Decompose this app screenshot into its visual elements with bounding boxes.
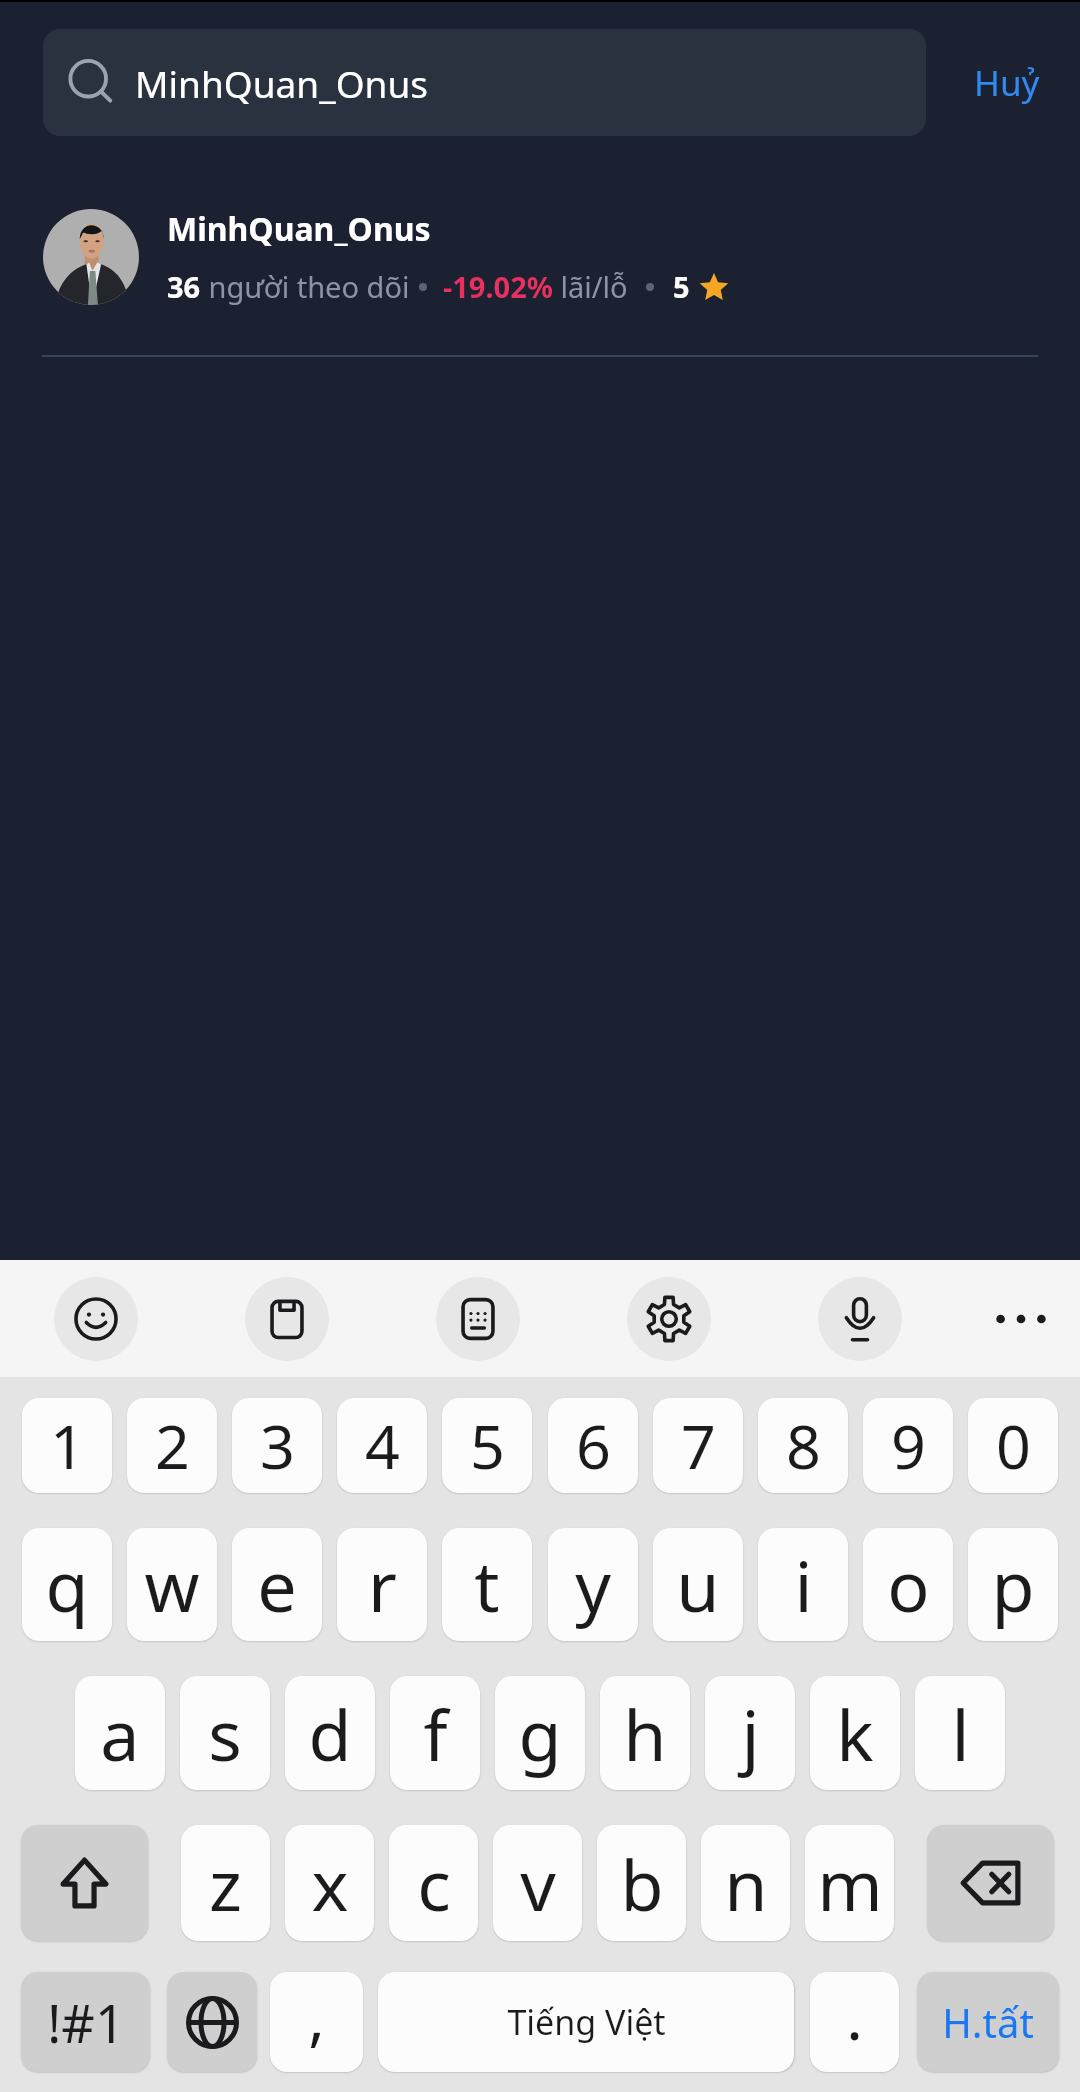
staticText: x xyxy=(311,1836,349,1931)
staticText: o xyxy=(887,1537,930,1632)
staticText: y xyxy=(575,1537,611,1632)
button[interactable]: , xyxy=(270,1972,363,2072)
button[interactable]: Change language xyxy=(167,1972,257,2072)
button[interactable]: g xyxy=(495,1676,585,1790)
staticText: 2 xyxy=(155,1404,190,1487)
button[interactable]: H.tất xyxy=(917,1972,1059,2072)
button[interactable]: w xyxy=(127,1528,217,1641)
button[interactable]: 6 xyxy=(548,1398,638,1493)
button[interactable]: e xyxy=(232,1528,322,1641)
button[interactable]: Stickers xyxy=(436,1277,520,1361)
button[interactable]: k xyxy=(810,1676,900,1790)
button[interactable]: c xyxy=(389,1825,478,1941)
button[interactable]: 9 xyxy=(863,1398,953,1493)
staticText: 5 xyxy=(673,267,690,306)
button[interactable]: r xyxy=(337,1528,427,1641)
staticText: t xyxy=(474,1537,500,1632)
staticText: H.tất xyxy=(942,1995,1034,2049)
staticText: z xyxy=(209,1836,242,1931)
button[interactable]: 5 xyxy=(442,1398,532,1493)
staticText: s xyxy=(208,1686,242,1781)
button[interactable]: d xyxy=(285,1676,375,1790)
staticText: p xyxy=(991,1537,1035,1632)
staticText: d xyxy=(308,1686,352,1781)
staticText: i xyxy=(794,1537,813,1632)
staticText: Tiếng Việt xyxy=(507,1999,666,2045)
staticText: c xyxy=(417,1836,451,1931)
button[interactable]: Clipboard xyxy=(245,1277,329,1361)
button[interactable]: 1 xyxy=(22,1398,112,1493)
button[interactable]: Settings xyxy=(627,1277,711,1361)
button[interactable]: Voice input xyxy=(818,1277,902,1361)
button[interactable]: 8 xyxy=(758,1398,848,1493)
staticText: a xyxy=(100,1686,140,1781)
button[interactable]: z xyxy=(181,1825,270,1941)
staticText: v xyxy=(520,1836,556,1931)
button[interactable]: y xyxy=(548,1528,638,1641)
staticText: j xyxy=(741,1686,760,1781)
staticText: 0 xyxy=(996,1404,1031,1487)
button[interactable]: 4 xyxy=(337,1398,427,1493)
button[interactable]: l xyxy=(915,1676,1005,1790)
staticText: q xyxy=(45,1537,89,1632)
button[interactable]: i xyxy=(758,1528,848,1641)
button[interactable]: Shift xyxy=(21,1825,148,1941)
staticText: w xyxy=(144,1537,200,1632)
button[interactable]: 2 xyxy=(127,1398,217,1493)
staticText: b xyxy=(620,1836,664,1931)
staticText: 3 xyxy=(260,1404,295,1487)
button[interactable]: 0 xyxy=(968,1398,1058,1493)
button[interactable]: m xyxy=(805,1825,894,1941)
button[interactable]: Emoji xyxy=(54,1277,138,1361)
button[interactable]: x xyxy=(285,1825,374,1941)
staticText: 1 xyxy=(50,1404,85,1487)
staticText: . xyxy=(846,1974,863,2058)
staticText: f xyxy=(423,1686,448,1781)
staticText: MinhQuan_Onus xyxy=(167,207,431,251)
button[interactable]: h xyxy=(600,1676,690,1790)
staticText: 7 xyxy=(681,1404,716,1487)
staticText: 9 xyxy=(891,1404,926,1487)
button[interactable]: MinhQuan_Onus xyxy=(43,29,926,136)
staticText: n xyxy=(724,1836,768,1931)
staticText: MinhQuan_Onus xyxy=(135,58,429,108)
button[interactable]: Backspace xyxy=(927,1825,1054,1941)
button[interactable]: v xyxy=(493,1825,582,1941)
button[interactable]: 3 xyxy=(232,1398,322,1493)
staticText: l xyxy=(951,1686,970,1781)
button[interactable]: p xyxy=(968,1528,1058,1641)
button[interactable]: a xyxy=(75,1676,165,1790)
button[interactable]: u xyxy=(653,1528,743,1641)
button[interactable]: j xyxy=(705,1676,795,1790)
staticText: người theo dõi xyxy=(201,267,410,306)
staticText: k xyxy=(836,1686,874,1781)
staticText: 8 xyxy=(786,1404,821,1487)
staticText: Huỷ xyxy=(974,59,1040,107)
button[interactable]: b xyxy=(597,1825,686,1941)
staticText: u xyxy=(676,1537,720,1632)
staticText: g xyxy=(518,1686,562,1781)
staticText: lãi/lỗ xyxy=(553,267,628,306)
staticText: h xyxy=(623,1686,667,1781)
staticText: , xyxy=(308,1974,325,2058)
button[interactable]: q xyxy=(22,1528,112,1641)
button[interactable]: More options xyxy=(979,1277,1063,1361)
button[interactable]: Huỷ xyxy=(926,29,1078,136)
button[interactable]: . xyxy=(810,1972,899,2072)
staticText: 36 xyxy=(167,267,201,306)
button[interactable]: !#1 xyxy=(21,1972,150,2072)
button[interactable]: t xyxy=(442,1528,532,1641)
button[interactable]: s xyxy=(180,1676,270,1790)
button[interactable]: MinhQuan_Onus xyxy=(0,207,1080,306)
button[interactable]: o xyxy=(863,1528,953,1641)
button[interactable]: f xyxy=(390,1676,480,1790)
button[interactable]: Tiếng Việt xyxy=(378,1972,794,2072)
staticText: -19.02% xyxy=(443,267,553,306)
staticText: 5 xyxy=(470,1404,505,1487)
button[interactable]: n xyxy=(701,1825,790,1941)
staticText: m xyxy=(817,1836,883,1931)
staticText: !#1 xyxy=(47,1987,125,2058)
button[interactable]: 7 xyxy=(653,1398,743,1493)
staticText: 4 xyxy=(365,1404,400,1487)
staticText: r xyxy=(368,1537,397,1632)
